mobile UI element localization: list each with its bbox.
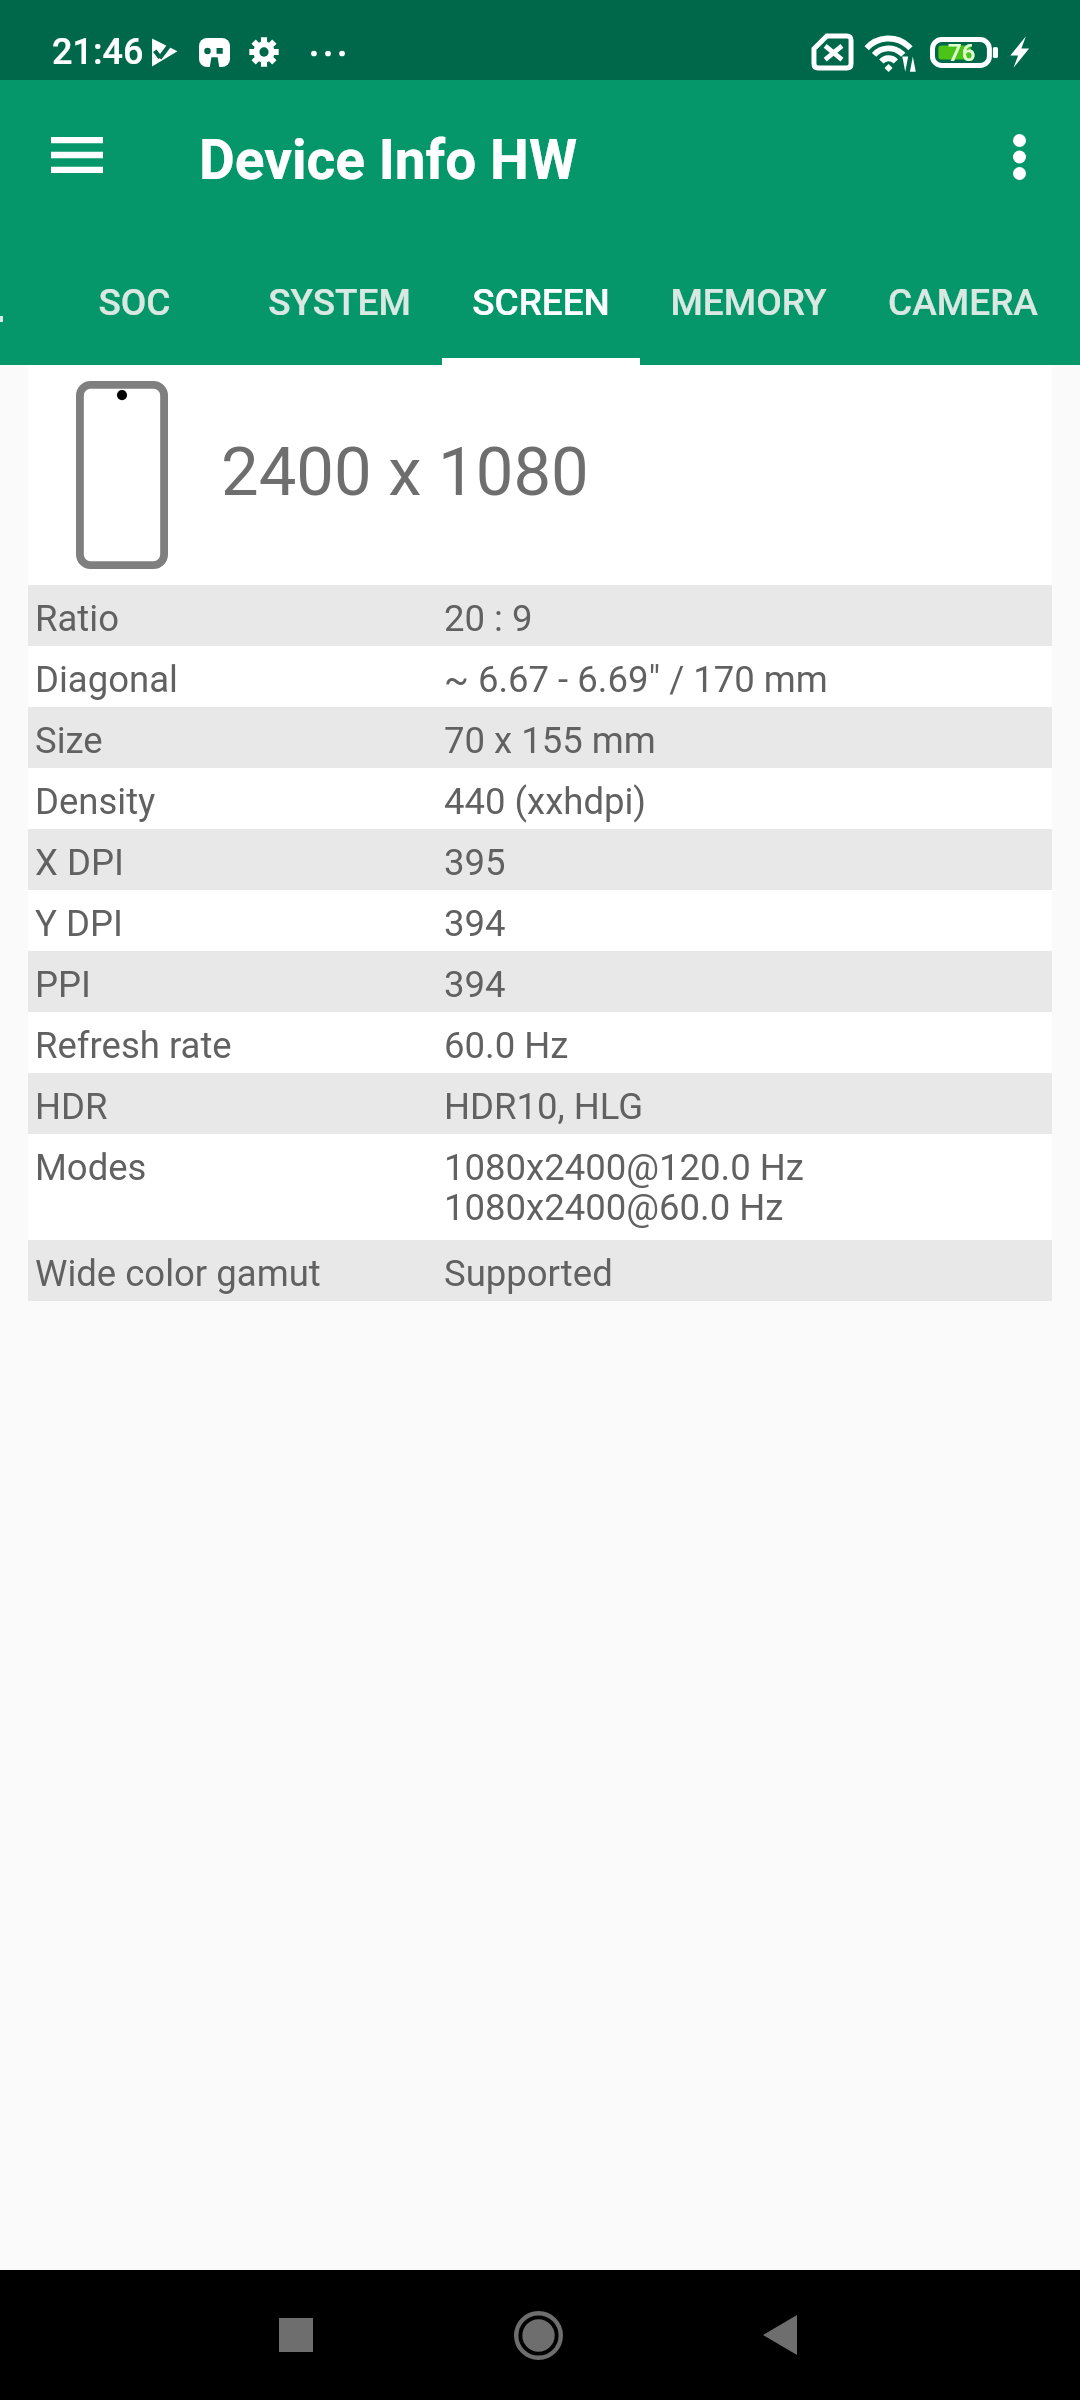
staticText: SCREEN: [472, 281, 610, 324]
staticText: Density: [35, 780, 444, 823]
staticText: ~ 6.67 - 6.69" / 170 mm: [444, 658, 828, 701]
staticText: MEMORY: [670, 281, 827, 324]
staticText: PPI: [35, 963, 444, 1006]
button[interactable]: Recent apps: [226, 2270, 366, 2400]
button[interactable]: SYSTEM: [236, 239, 442, 365]
button[interactable]: Modes: [28, 1134, 1052, 1240]
button[interactable]: Home: [468, 2270, 608, 2400]
staticText: Refresh rate: [35, 1024, 444, 1067]
staticText: Wide color gamut: [35, 1252, 444, 1295]
staticText: Diagonal: [35, 658, 444, 701]
staticText: 70 x 155 mm: [444, 719, 656, 762]
button[interactable]: More options: [961, 101, 1078, 218]
button[interactable]: CAMERA: [857, 239, 1069, 365]
button[interactable]: Refresh rate: [28, 1012, 1052, 1073]
button[interactable]: Back: [710, 2270, 850, 2400]
staticText: 1080x2400@120.0 Hz 1080x2400@60.0 Hz: [444, 1146, 804, 1229]
staticText: 20 : 9: [444, 597, 533, 640]
staticText: Y DPI: [35, 902, 444, 945]
staticText: 21:46: [52, 31, 144, 73]
staticText: Supported: [444, 1252, 613, 1295]
staticText: CAMERA: [888, 281, 1038, 324]
staticText: SYSTEM: [268, 281, 411, 324]
staticText: X DPI: [35, 841, 444, 884]
staticText: Ratio: [35, 597, 444, 640]
button[interactable]: PPI: [28, 951, 1052, 1012]
staticText: 394: [444, 902, 506, 945]
staticText: 394: [444, 963, 506, 1006]
staticText: Modes: [35, 1146, 444, 1189]
button[interactable]: SOC: [33, 239, 236, 365]
button[interactable]: Ratio: [28, 585, 1052, 646]
staticText: Device Info HW: [199, 128, 578, 192]
button[interactable]: Density: [28, 768, 1052, 829]
staticText: 2400 x 1080: [221, 433, 589, 512]
button[interactable]: SCREEN: [442, 239, 640, 365]
staticText: 76: [948, 39, 976, 67]
button[interactable]: HDR: [28, 1073, 1052, 1134]
staticText: 395: [444, 841, 506, 884]
button[interactable]: X DPI: [28, 829, 1052, 890]
button[interactable]: Battery tab: [0, 239, 33, 365]
staticText: 60.0 Hz: [444, 1024, 569, 1067]
button[interactable]: Wide color gamut: [28, 1240, 1052, 1301]
staticText: Size: [35, 719, 444, 762]
button[interactable]: Size: [28, 707, 1052, 768]
staticText: 440 (xxhdpi): [444, 780, 647, 823]
button[interactable]: MEMORY: [640, 239, 857, 365]
staticText: HDR: [35, 1085, 444, 1128]
staticText: SOC: [98, 281, 171, 324]
button[interactable]: Diagonal: [28, 646, 1052, 707]
button[interactable]: Y DPI: [28, 890, 1052, 951]
staticText: HDR10, HLG: [444, 1085, 644, 1128]
button[interactable]: Open navigation menu: [18, 101, 135, 218]
